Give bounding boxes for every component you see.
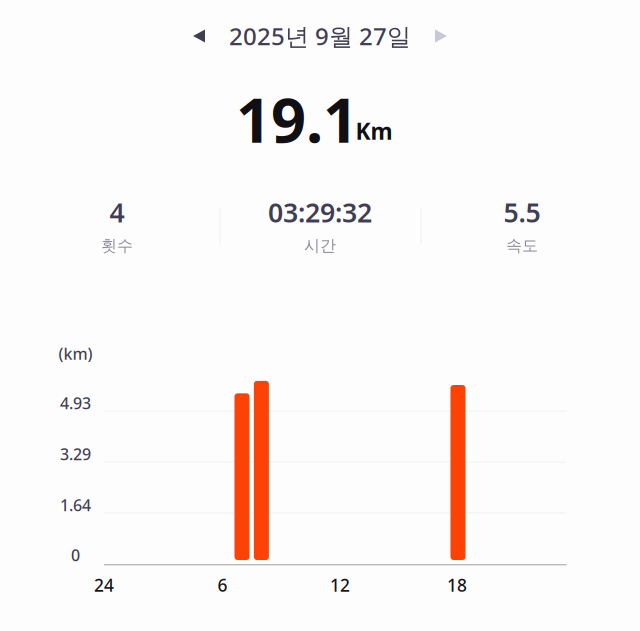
staticText: 5.5 bbox=[503, 194, 540, 230]
button[interactable]: Next day bbox=[419, 14, 463, 58]
staticText: 횟수 bbox=[101, 236, 133, 256]
staticText: 3.29 bbox=[60, 443, 91, 465]
staticText: (km) bbox=[58, 343, 92, 364]
staticText: 24 bbox=[94, 573, 114, 596]
staticText: 12 bbox=[330, 573, 350, 596]
staticText: 6 bbox=[217, 573, 227, 596]
button[interactable]: Previous day bbox=[177, 14, 221, 58]
staticText: 2025년 9월 27일 bbox=[229, 20, 411, 52]
staticText: 4.93 bbox=[60, 392, 91, 414]
staticText: 0 bbox=[71, 544, 80, 566]
staticText: Km bbox=[355, 116, 392, 146]
staticText: 속도 bbox=[506, 236, 538, 256]
staticText: 시간 bbox=[304, 236, 336, 256]
button[interactable]: 2025년 9월 27일 bbox=[210, 14, 430, 58]
staticText: 19.1 bbox=[236, 78, 358, 160]
staticText: 1.64 bbox=[60, 494, 91, 516]
staticText: 18 bbox=[447, 573, 467, 596]
staticText: 03:29:32 bbox=[268, 194, 372, 230]
staticText: 4 bbox=[109, 194, 124, 230]
